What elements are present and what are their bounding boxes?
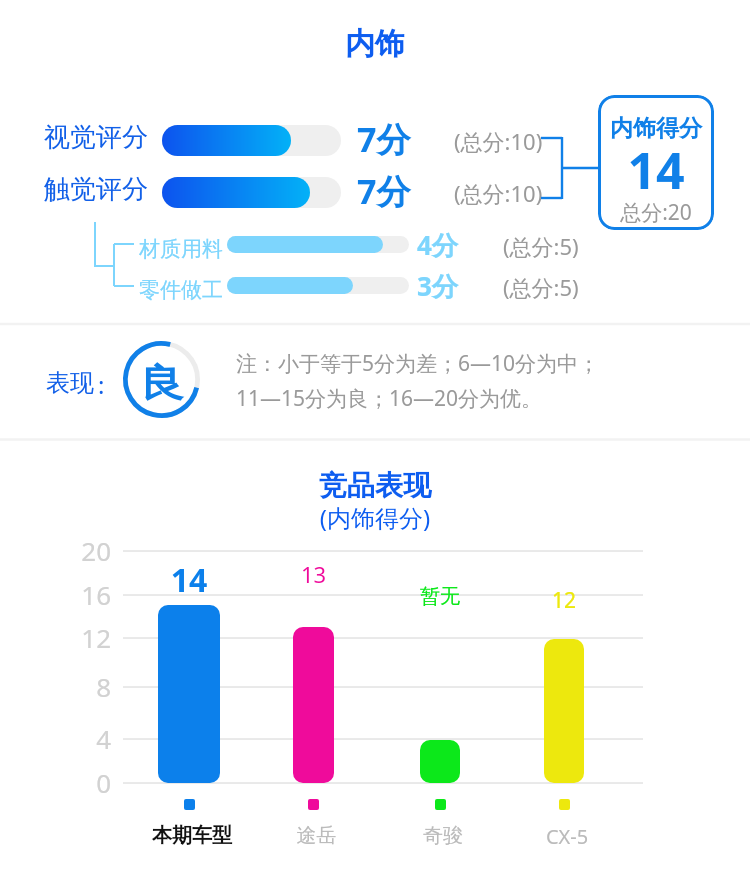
staticText: 视觉评分	[44, 121, 148, 154]
staticText: 触觉评分	[44, 173, 148, 206]
staticText: :	[98, 368, 105, 401]
staticText: 13	[233, 559, 394, 589]
staticText: 7分	[357, 168, 411, 214]
staticText: 本期车型	[91, 823, 293, 848]
staticText: 注：小于等于5分为差；6—10分为中； 11—15分为良；16—20分为优。	[236, 349, 636, 413]
staticText: 零件做工	[139, 277, 223, 303]
staticText: 12	[60, 620, 111, 655]
staticText: 20	[60, 533, 111, 568]
staticText: (总分:5)	[503, 231, 579, 261]
staticText: 途岳	[226, 823, 407, 848]
staticText: 7分	[357, 116, 411, 162]
staticText: 4	[60, 721, 111, 756]
staticText: 暂无	[360, 584, 520, 609]
staticText: 内饰得分	[598, 114, 714, 143]
staticText: (总分:10)	[454, 126, 543, 156]
button[interactable]: 内饰得分	[598, 95, 714, 230]
staticText: CX-5	[477, 823, 657, 850]
staticText: 16	[60, 577, 111, 612]
staticText: 奇骏	[353, 823, 533, 848]
staticText: 良	[114, 359, 208, 407]
staticText: 3分	[417, 268, 458, 304]
staticText: 14	[98, 558, 280, 602]
staticText: 4分	[417, 227, 458, 263]
staticText: (总分:5)	[503, 272, 579, 302]
staticText: 材质用料	[139, 236, 223, 262]
button[interactable]: 奇骏	[420, 740, 460, 783]
staticText: (总分:10)	[454, 178, 543, 208]
staticText: 总分:20	[598, 198, 714, 227]
staticText: 8	[60, 669, 111, 704]
staticText: 内饰	[0, 25, 750, 63]
staticText: (内饰得分)	[0, 501, 750, 534]
staticText: 竞品表现	[0, 468, 750, 503]
staticText: 14	[598, 136, 714, 204]
button[interactable]: 途岳	[293, 627, 334, 783]
button[interactable]: 本期车型	[158, 605, 220, 783]
staticText: 12	[484, 586, 644, 615]
button[interactable]: CX-5	[544, 639, 584, 783]
staticText: 表现	[46, 368, 94, 398]
staticText: 0	[60, 765, 111, 800]
